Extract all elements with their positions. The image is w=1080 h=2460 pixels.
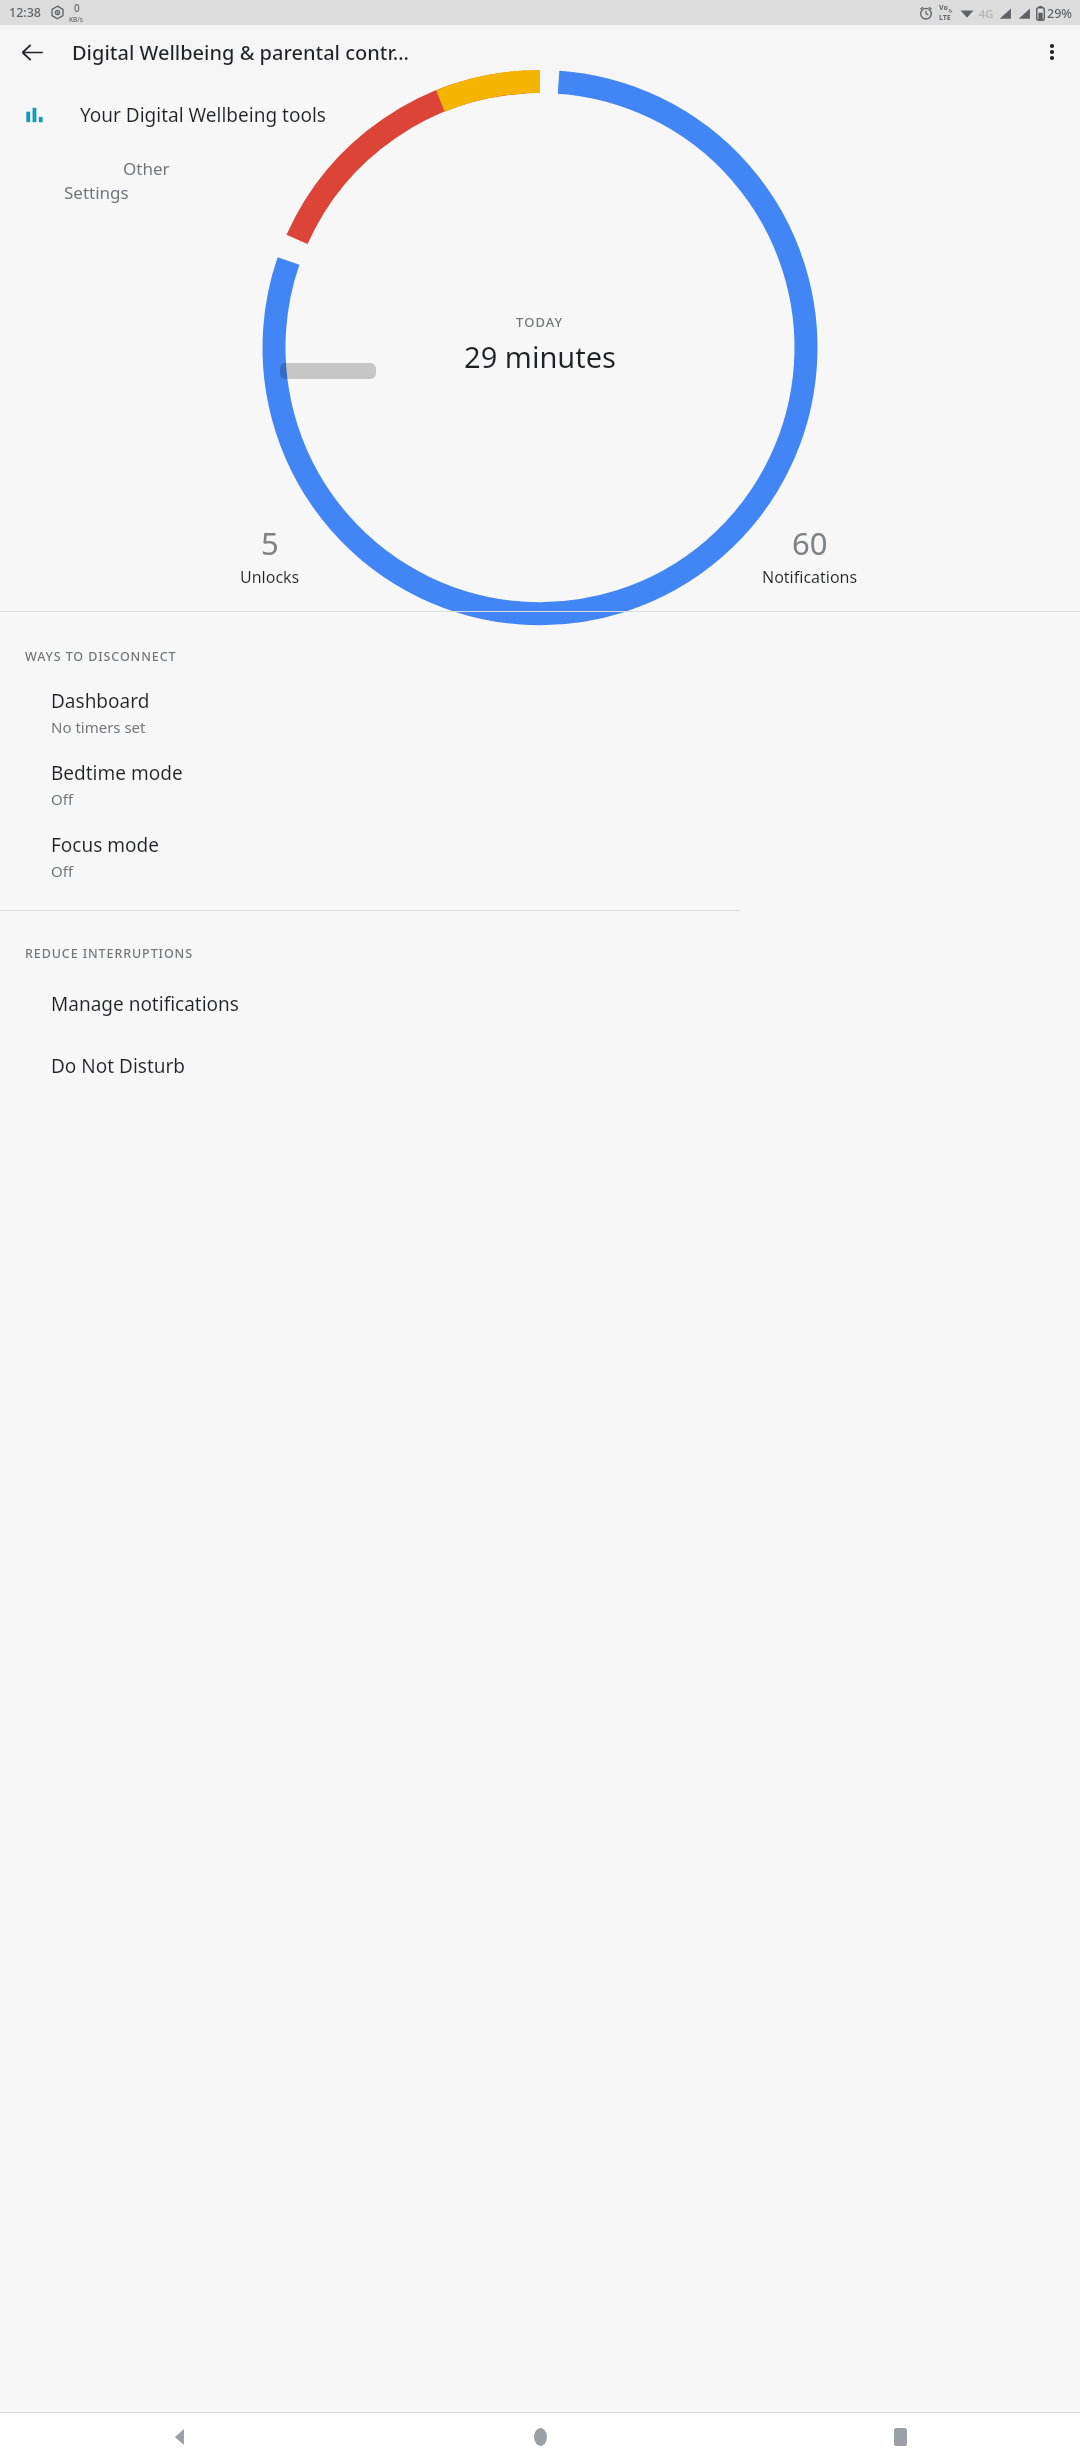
staticText: REDUCE INTERRUPTIONS: [25, 945, 193, 962]
button[interactable]: Recents: [720, 2413, 1080, 2460]
staticText: TODAY: [516, 313, 564, 331]
staticText: Settings: [64, 181, 129, 204]
staticText: Manage notifications: [51, 991, 239, 1017]
button[interactable]: Home: [360, 2413, 720, 2460]
button[interactable]: Back: [8, 28, 56, 76]
button[interactable]: 60: [540, 499, 1080, 611]
button[interactable]: Manage notifications: [0, 973, 1080, 1035]
staticText: No timers set: [51, 717, 146, 737]
button[interactable]: Bedtime mode: [0, 748, 1080, 820]
staticText: Your Digital Wellbeing tools: [80, 102, 326, 128]
staticText: KB/s: [69, 15, 84, 24]
button[interactable]: Your Digital Wellbeing tools: [0, 79, 1080, 151]
button[interactable]: Do Not Disturb: [0, 1035, 1080, 1097]
staticText: LTE: [939, 13, 951, 23]
staticText: Bedtime mode: [51, 760, 183, 786]
staticText: Notifications: [762, 566, 858, 588]
button[interactable]: 5: [0, 499, 540, 611]
button[interactable]: Focus mode: [0, 820, 1080, 892]
staticText: Do Not Disturb: [51, 1053, 186, 1079]
button[interactable]: Back: [0, 2413, 360, 2460]
staticText: 5: [261, 522, 279, 564]
staticText: Off: [51, 789, 74, 809]
staticText: WAYS TO DISCONNECT: [25, 648, 177, 665]
staticText: Vo: [939, 3, 948, 13]
staticText: 12:38: [9, 4, 42, 21]
staticText: Unlocks: [240, 566, 300, 588]
staticText: Focus mode: [51, 832, 159, 858]
button[interactable]: More options: [1030, 30, 1074, 74]
staticText: Dashboard: [51, 688, 150, 714]
staticText: Other: [123, 157, 170, 180]
staticText: 29 minutes: [464, 337, 616, 376]
staticText: Digital Wellbeing & parental contr…: [72, 39, 409, 66]
button[interactable]: Dashboard: [0, 676, 1080, 748]
staticText: 29%: [1047, 5, 1072, 22]
staticText: 60: [792, 522, 828, 564]
staticText: 4G: [979, 6, 994, 21]
staticText: Off: [51, 861, 74, 881]
staticText: 0: [74, 1, 80, 15]
